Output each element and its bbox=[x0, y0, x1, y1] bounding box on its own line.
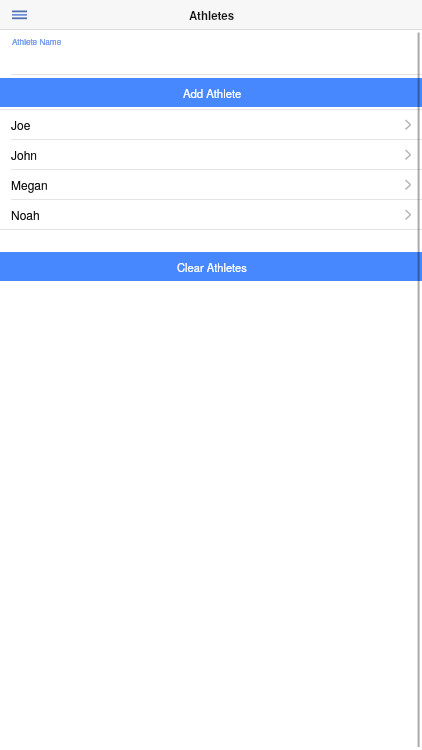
staticText: Joe bbox=[11, 116, 31, 133]
button[interactable]: Menu bbox=[0, 0, 39, 29]
staticText: Athlete Name bbox=[12, 36, 62, 48]
button[interactable]: Clear Athletes bbox=[0, 252, 422, 281]
staticText: John bbox=[11, 146, 38, 163]
button[interactable]: Add Athlete bbox=[0, 78, 422, 107]
staticText: Athlete Name bbox=[12, 36, 62, 48]
staticText: Megan bbox=[11, 176, 48, 193]
button[interactable]: John bbox=[0, 140, 422, 169]
button[interactable]: Athlete Name bbox=[0, 30, 422, 74]
staticText: Noah bbox=[11, 206, 40, 223]
button[interactable]: Joe bbox=[0, 110, 422, 139]
staticText: Add Athlete bbox=[183, 85, 242, 101]
staticText: Noah bbox=[11, 206, 40, 223]
staticText: Megan bbox=[11, 176, 48, 193]
staticText: Clear Athletes bbox=[177, 259, 247, 275]
button[interactable]: Noah bbox=[0, 200, 422, 229]
staticText: Joe bbox=[11, 116, 31, 133]
button[interactable]: Megan bbox=[0, 170, 422, 199]
staticText: John bbox=[11, 146, 38, 163]
staticText: Athletes bbox=[189, 7, 235, 23]
